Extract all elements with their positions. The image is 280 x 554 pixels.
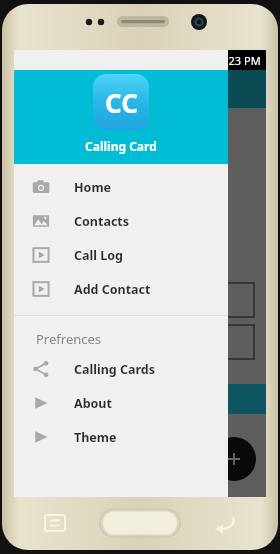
staticText: Contacts: [74, 213, 130, 230]
button[interactable]: Add Contact: [14, 272, 228, 306]
staticText: CC: [105, 85, 138, 120]
button[interactable]: Call Log: [14, 238, 228, 272]
staticText: Home: [74, 179, 112, 196]
button[interactable]: Home: [14, 170, 228, 204]
button[interactable]: Calling Cards: [14, 352, 228, 386]
staticText: Theme: [74, 429, 117, 446]
button[interactable]: CC: [14, 70, 228, 164]
staticText: Call Log: [74, 247, 123, 264]
staticText: Calling Cards: [74, 361, 156, 378]
staticText: Prefrences: [36, 330, 102, 348]
button[interactable]: Contacts: [14, 204, 228, 238]
button[interactable]: Add: [212, 437, 256, 481]
button[interactable]: About: [14, 386, 228, 420]
button[interactable]: Theme: [14, 420, 228, 454]
staticText: Calling Card: [85, 138, 157, 154]
staticText: About: [74, 395, 112, 412]
staticText: Add Contact: [74, 281, 151, 298]
staticText: 10:23 PM: [213, 53, 261, 68]
